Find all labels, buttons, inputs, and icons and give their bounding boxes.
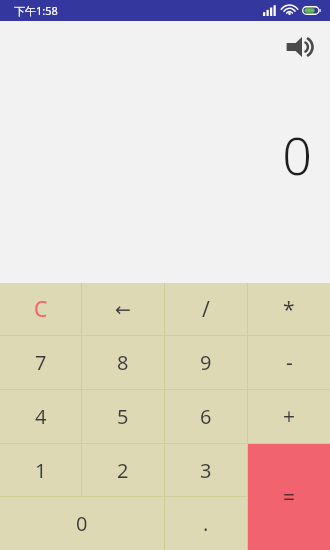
button[interactable]: 1 xyxy=(0,444,81,496)
button[interactable]: = xyxy=(248,444,330,550)
staticText: 0 xyxy=(282,119,312,190)
staticText: 7 xyxy=(35,349,47,376)
button[interactable]: - xyxy=(248,336,330,389)
staticText: 6 xyxy=(200,403,212,430)
button[interactable]: + xyxy=(248,390,330,443)
staticText: 8 xyxy=(117,349,129,376)
staticText: 4 xyxy=(35,403,47,430)
button[interactable]: 7 xyxy=(0,336,81,389)
button[interactable]: 5 xyxy=(82,390,164,443)
staticText: 1 xyxy=(35,457,47,484)
button[interactable]: * xyxy=(248,283,330,335)
staticText: C xyxy=(34,295,48,324)
button[interactable]: Toggle sound xyxy=(282,27,322,67)
button[interactable]: 6 xyxy=(165,390,247,443)
button[interactable]: 2 xyxy=(82,444,164,496)
staticText: 9 xyxy=(200,349,212,376)
staticText: 下午1:58 xyxy=(14,3,58,18)
button[interactable]: ← xyxy=(82,283,164,335)
staticText: / xyxy=(202,295,210,324)
staticText: - xyxy=(286,348,293,377)
button[interactable]: 0 xyxy=(0,497,164,550)
staticText: 3 xyxy=(200,457,212,484)
staticText: * xyxy=(283,295,295,324)
staticText: + xyxy=(283,402,296,431)
staticText: 2 xyxy=(117,457,129,484)
staticText: ← xyxy=(115,298,131,320)
button[interactable]: . xyxy=(165,497,247,550)
staticText: 0 xyxy=(76,510,88,537)
staticText: 5 xyxy=(117,403,129,430)
staticText: = xyxy=(283,483,296,512)
staticText: . xyxy=(203,510,209,537)
button[interactable]: / xyxy=(165,283,247,335)
button[interactable]: 9 xyxy=(165,336,247,389)
button[interactable]: C xyxy=(0,283,81,335)
button[interactable]: 3 xyxy=(165,444,247,496)
button[interactable]: 4 xyxy=(0,390,81,443)
button[interactable]: 8 xyxy=(82,336,164,389)
